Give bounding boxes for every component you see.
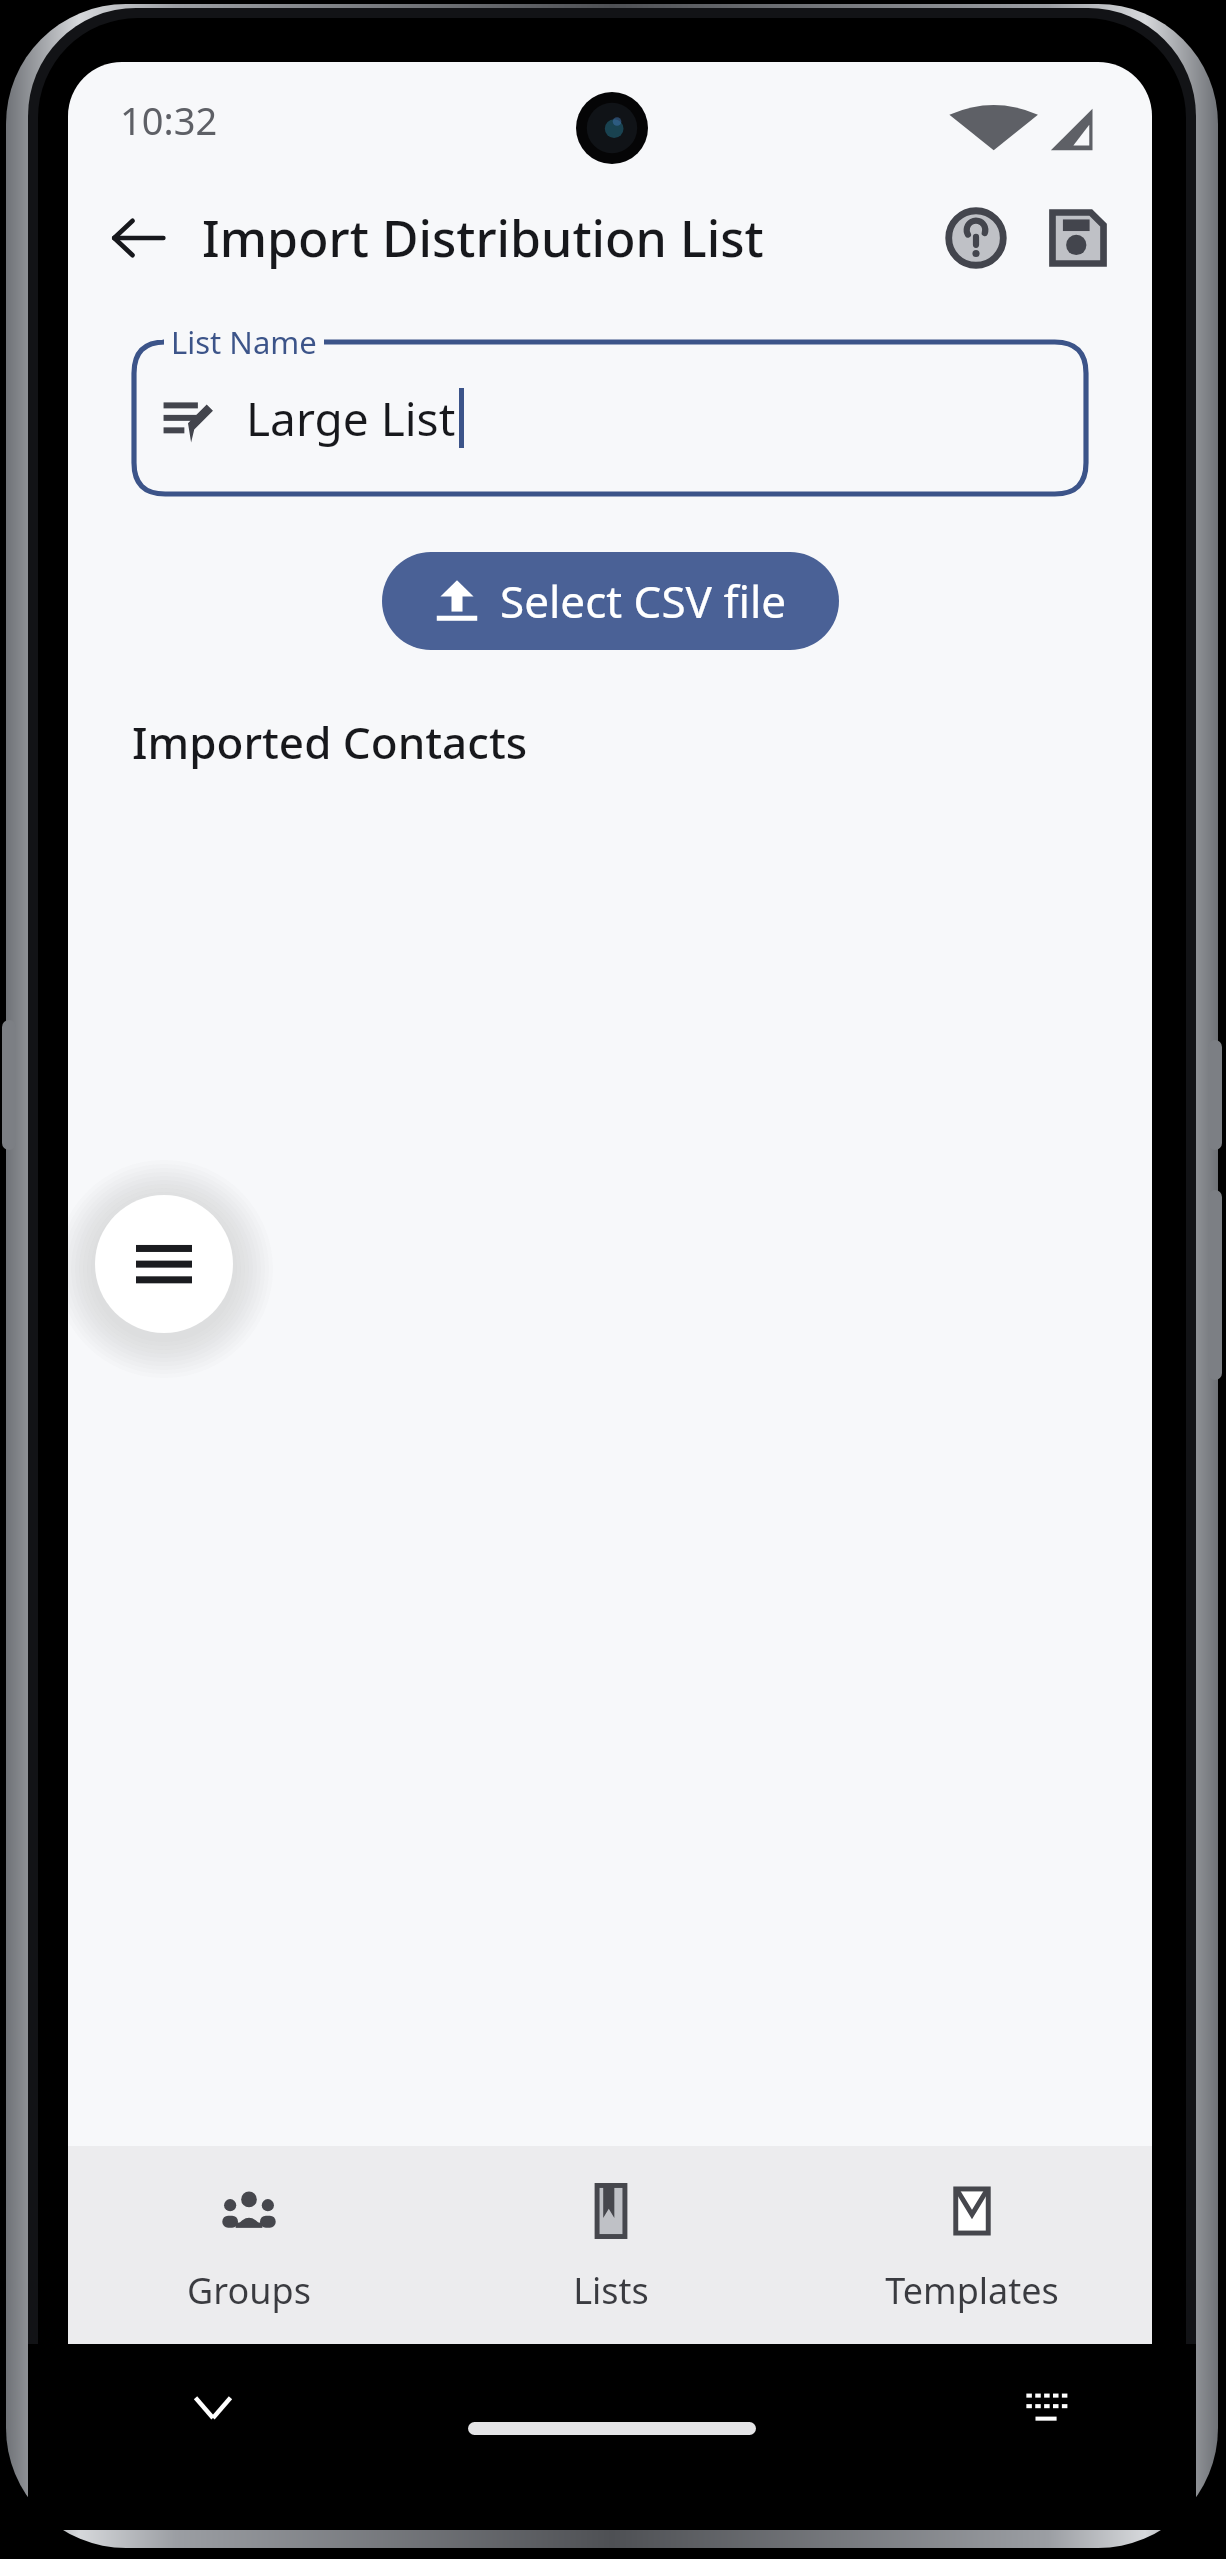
button[interactable]: Hide keyboard: [168, 2362, 258, 2452]
button[interactable]: Templates: [791, 2146, 1152, 2344]
staticText: Templates: [885, 2266, 1059, 2315]
button[interactable]: Save: [1032, 192, 1124, 284]
button[interactable]: Menu: [95, 1195, 233, 1333]
button[interactable]: Groups: [68, 2146, 430, 2344]
staticText: List Name: [171, 321, 317, 363]
staticText: Large List: [246, 387, 456, 450]
staticText: Select CSV file: [500, 571, 787, 631]
staticText: 10:32: [120, 94, 218, 146]
staticText: Imported Contacts: [132, 712, 528, 772]
button[interactable]: Lists: [430, 2146, 791, 2344]
staticText: Import Distribution List: [202, 204, 764, 272]
staticText: Groups: [187, 2266, 311, 2315]
staticText: Lists: [573, 2266, 649, 2315]
button[interactable]: List Name: [134, 342, 1086, 494]
button[interactable]: Change keyboard: [1002, 2362, 1092, 2452]
button[interactable]: Select CSV file: [382, 552, 839, 650]
button[interactable]: Back: [90, 190, 186, 286]
button[interactable]: Help: [930, 192, 1022, 284]
